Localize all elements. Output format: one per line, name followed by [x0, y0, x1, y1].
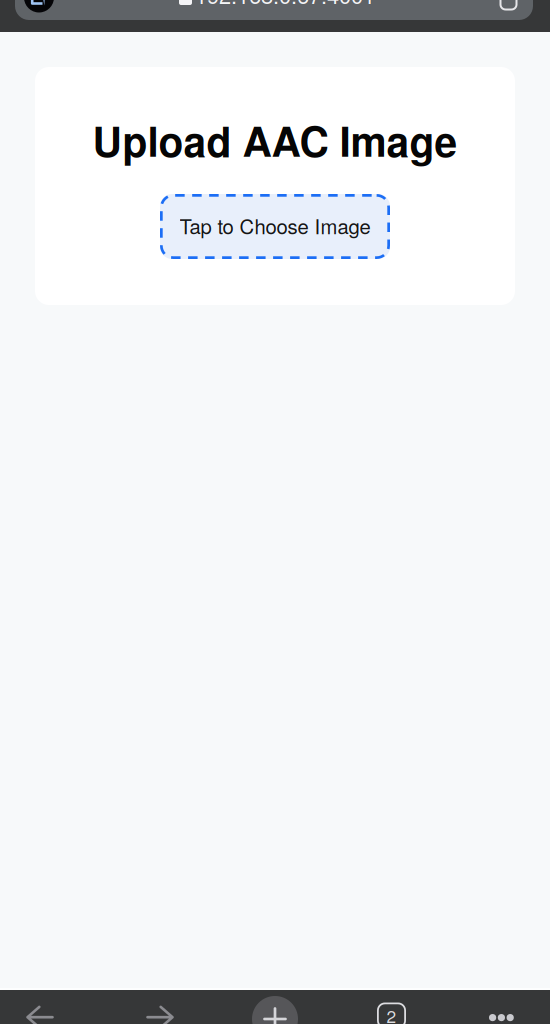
button[interactable]: More	[489, 1014, 514, 1021]
button[interactable]: Tap to Choose Image	[160, 194, 390, 259]
staticText: 2	[386, 1003, 396, 1024]
staticText: Tap to Choose Image	[179, 211, 370, 240]
staticText: Upload AAC Image	[92, 111, 457, 169]
button[interactable]: Share	[499, 0, 518, 7]
button[interactable]: Back	[26, 1006, 54, 1024]
button[interactable]: Address	[15, 0, 533, 20]
button[interactable]: Forward	[146, 1006, 174, 1024]
staticText: 192.168.0.67:4001	[195, 0, 375, 10]
button[interactable]: New Tab	[252, 996, 298, 1024]
button[interactable]: Page Settings	[24, 0, 54, 12]
button[interactable]: Tabs	[377, 1002, 406, 1024]
